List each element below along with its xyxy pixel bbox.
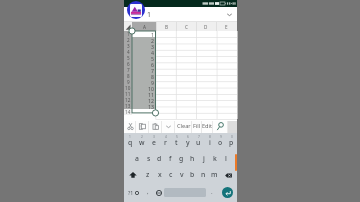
staticText: u: [196, 138, 201, 147]
button[interactable]: b: [187, 167, 198, 183]
button[interactable]: 3: [148, 135, 160, 151]
staticText: .: [211, 188, 213, 196]
button[interactable]: n: [198, 167, 209, 183]
staticText: ,: [147, 188, 149, 196]
staticText: r: [164, 138, 167, 147]
staticText: 3: [127, 43, 130, 49]
staticText: 12: [148, 97, 154, 103]
button[interactable]: j: [198, 151, 209, 167]
button[interactable]: f: [165, 151, 176, 167]
staticText: 13: [125, 103, 131, 109]
button[interactable]: Fill: [192, 121, 202, 133]
staticText: 13: [148, 103, 154, 109]
staticText: c: [169, 170, 173, 179]
button[interactable]: 4: [160, 135, 171, 151]
staticText: 12: [125, 97, 131, 103]
button[interactable]: Symbols: [124, 183, 142, 202]
staticText: 5: [151, 55, 154, 61]
button[interactable]: s: [143, 151, 154, 167]
staticText: v: [180, 170, 184, 179]
staticText: E: [225, 24, 228, 30]
staticText: s: [147, 154, 151, 163]
staticText: 4: [165, 135, 167, 139]
staticText: m: [211, 170, 218, 179]
button[interactable]: Change language: [153, 183, 164, 202]
staticText: g: [179, 154, 184, 163]
staticText: 0: [231, 135, 233, 139]
staticText: 1: [147, 10, 152, 20]
staticText: 2: [151, 37, 154, 43]
staticText: 4: [151, 49, 154, 55]
button[interactable]: Backspace: [220, 167, 237, 183]
staticText: B: [165, 24, 168, 30]
button[interactable]: Shift: [124, 167, 142, 183]
button[interactable]: Copy: [136, 121, 149, 133]
staticText: Fill: [193, 122, 201, 130]
staticText: 1: [151, 31, 154, 37]
staticText: 11: [125, 91, 131, 97]
button[interactable]: v: [176, 167, 187, 183]
button[interactable]: 7: [193, 135, 204, 151]
staticText: h: [190, 154, 195, 163]
button[interactable]: ,: [142, 183, 153, 202]
staticText: 9: [127, 79, 130, 85]
staticText: A: [143, 24, 146, 30]
button[interactable]: x: [154, 167, 165, 183]
staticText: a: [135, 154, 139, 163]
staticText: 8: [209, 135, 211, 139]
button[interactable]: 2: [136, 135, 148, 151]
button[interactable]: 9: [215, 135, 226, 151]
button[interactable]: 0: [226, 135, 237, 151]
staticText: C: [185, 24, 188, 30]
button[interactable]: d: [154, 151, 165, 167]
staticText: 9: [151, 79, 154, 85]
button[interactable]: z: [142, 167, 154, 183]
button[interactable]: 5: [171, 135, 182, 151]
staticText: 6: [187, 135, 189, 139]
staticText: f: [169, 154, 172, 163]
button[interactable]: Search: [213, 121, 228, 133]
button[interactable]: a: [131, 151, 143, 167]
button[interactable]: Clear: [175, 121, 192, 133]
staticText: p: [229, 138, 234, 147]
staticText: i: [209, 138, 211, 147]
staticText: b: [190, 170, 195, 179]
staticText: 6: [151, 61, 154, 67]
button[interactable]: Cut: [124, 121, 136, 133]
staticText: D: [204, 24, 208, 30]
staticText: j: [203, 154, 205, 163]
button[interactable]: Edit: [202, 121, 213, 133]
staticText: Edit: [202, 122, 213, 130]
button[interactable]: Paste: [149, 121, 162, 133]
staticText: e: [152, 138, 156, 147]
staticText: 3: [151, 43, 154, 49]
staticText: 7: [151, 67, 154, 73]
button[interactable]: More options: [162, 121, 175, 133]
button[interactable]: 1: [124, 135, 136, 151]
staticText: 5: [127, 55, 130, 61]
staticText: z: [146, 170, 150, 179]
button[interactable]: k: [209, 151, 220, 167]
staticText: y: [186, 138, 190, 147]
staticText: 1: [127, 31, 130, 37]
button[interactable]: App icon: [127, 1, 145, 19]
staticText: 6: [127, 61, 130, 67]
button[interactable]: 6: [182, 135, 193, 151]
button[interactable]: Enter: [217, 183, 237, 202]
staticText: 2: [141, 135, 143, 139]
button[interactable]: c: [165, 167, 176, 183]
button[interactable]: h: [187, 151, 198, 167]
staticText: 8: [151, 73, 154, 79]
button[interactable]: 8: [204, 135, 215, 151]
staticText: 5: [176, 135, 178, 139]
button[interactable]: m: [209, 167, 220, 183]
staticText: 10: [148, 85, 154, 91]
staticText: x: [158, 170, 162, 179]
button[interactable]: g: [176, 151, 187, 167]
button[interactable]: l: [220, 151, 231, 167]
staticText: q: [128, 138, 133, 147]
staticText: 11: [148, 91, 154, 97]
staticText: o: [218, 138, 223, 147]
